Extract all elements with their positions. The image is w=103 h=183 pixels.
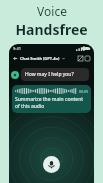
button[interactable]: New chat [84, 55, 91, 62]
staticText: Summarize the main content of this audio [15, 96, 88, 110]
button[interactable]: Back [12, 55, 19, 62]
staticText: Chat Smith (GPT-4o) [20, 56, 60, 61]
staticText: How may I help you? [25, 71, 74, 78]
button[interactable]: How may I help you? [25, 71, 85, 78]
staticText: 9:41 [13, 46, 21, 51]
staticText: Handsfree [15, 20, 88, 39]
button[interactable]: Image [77, 55, 84, 62]
button[interactable]: 00:09 [12, 85, 91, 113]
button[interactable]: Back [12, 53, 91, 64]
staticText: 00:09 [79, 89, 88, 94]
button[interactable]: Microphone [43, 156, 60, 173]
staticText: Voice [37, 3, 67, 19]
